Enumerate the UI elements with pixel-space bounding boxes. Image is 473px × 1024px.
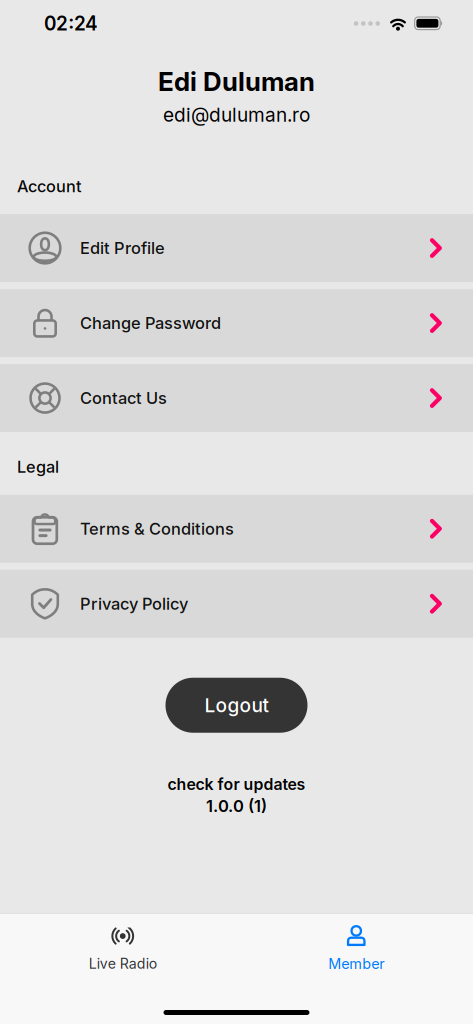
button[interactable]: Contact Us (0, 364, 473, 432)
staticText: edi@duluman.ro (163, 103, 310, 126)
staticText: check for updates (167, 775, 305, 794)
staticText: Terms & Conditions (80, 519, 234, 539)
staticText: Edi Duluman (158, 66, 315, 97)
staticText: Edit Profile (80, 238, 165, 258)
staticText: Privacy Policy (80, 594, 188, 614)
staticText: Legal (17, 457, 59, 477)
staticText: 02:24 (44, 12, 98, 35)
staticText: Live Radio (89, 955, 157, 972)
staticText: Member (328, 955, 384, 972)
button[interactable]: Change Password (0, 289, 473, 357)
button[interactable]: Live Radio (6, 923, 239, 975)
staticText: Contact Us (80, 388, 167, 408)
button[interactable]: Edit Profile (0, 214, 473, 282)
staticText: Account (17, 176, 82, 196)
button[interactable]: Member (239, 923, 473, 975)
button[interactable]: Logout (165, 678, 307, 733)
button[interactable]: Privacy Policy (0, 570, 473, 638)
staticText: Logout (204, 694, 268, 717)
staticText: Change Password (80, 313, 221, 333)
button[interactable]: Terms & Conditions (0, 495, 473, 563)
staticText: 1.0.0 (1) (206, 796, 267, 816)
